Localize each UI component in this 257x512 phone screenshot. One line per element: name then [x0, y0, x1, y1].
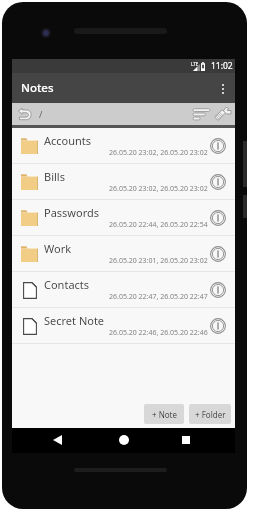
button[interactable]: Back [47, 429, 68, 450]
staticText: / [39, 108, 43, 120]
staticText: + Folder [195, 409, 226, 420]
staticText: Secret Note [44, 313, 105, 328]
staticText: Bills [44, 169, 65, 184]
button[interactable]: Up one level [17, 103, 33, 125]
button[interactable]: Secret Note [12, 308, 235, 344]
staticText: 26.05.20 22:47, 26.05.20 22:47 [109, 292, 208, 302]
button[interactable]: Home [113, 429, 134, 450]
staticText: Accounts [44, 133, 92, 148]
button[interactable]: + Note [144, 404, 184, 424]
staticText: Notes [21, 80, 54, 96]
button[interactable]: Settings [213, 103, 232, 125]
button[interactable]: Info [208, 244, 228, 264]
button[interactable]: Bills [12, 164, 235, 200]
staticText: Passwords [44, 205, 100, 220]
staticText: Contacts [44, 277, 90, 292]
staticText: 26.05.20 23:02, 26.05.20 23:02 [109, 184, 208, 194]
staticText: 11:02 [211, 60, 233, 72]
button[interactable]: Contacts [12, 272, 235, 308]
staticText: LTE [191, 61, 199, 67]
button[interactable]: Work [12, 236, 235, 272]
button[interactable]: Info [208, 172, 228, 192]
button[interactable]: Info [208, 208, 228, 228]
staticText: 26.05.20 22:44, 26.05.20 22:54 [109, 220, 208, 230]
staticText: 26.05.20 23:01, 26.05.20 23:02 [109, 256, 208, 266]
button[interactable]: Info [208, 316, 228, 336]
button[interactable]: + Folder [189, 404, 231, 424]
staticText: + Note [152, 409, 177, 420]
button[interactable]: More options [212, 74, 234, 103]
button[interactable]: Recent apps [175, 429, 196, 450]
staticText: 26.05.20 22:46, 26.05.20 22:46 [109, 328, 208, 338]
button[interactable]: Sort [192, 103, 211, 125]
staticText: Work [44, 241, 72, 256]
button[interactable]: Info [208, 136, 228, 156]
button[interactable]: Info [208, 280, 228, 300]
button[interactable]: Passwords [12, 200, 235, 236]
button[interactable]: Accounts [12, 128, 235, 164]
staticText: 26.05.20 23:02, 26.05.20 23:02 [109, 148, 208, 158]
